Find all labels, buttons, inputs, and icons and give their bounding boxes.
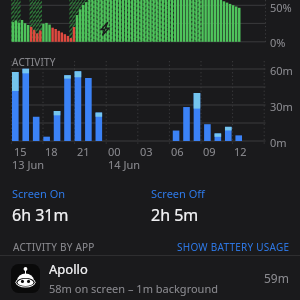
staticText: 06	[171, 144, 184, 159]
staticText: 59m	[264, 270, 289, 286]
staticText: 14 Jun	[108, 157, 141, 172]
staticText: 12	[234, 144, 247, 159]
staticText: 09	[203, 144, 216, 159]
staticText: 18	[45, 144, 58, 159]
button[interactable]: Apollo	[0, 256, 300, 300]
staticText: 0%	[270, 35, 286, 50]
staticText: 13 Jun	[12, 157, 45, 172]
staticText: Screen Off	[151, 186, 205, 201]
staticText: 2h 5m	[151, 204, 199, 226]
staticText: 03	[140, 144, 153, 159]
button[interactable]: SHOW BATTERY USAGE	[177, 240, 290, 254]
staticText: 60m	[270, 63, 293, 78]
staticText: 0m	[270, 135, 287, 150]
staticText: SHOW BATTERY USAGE	[177, 240, 290, 254]
staticText: 50%	[270, 0, 292, 15]
staticText: ACTIVITY BY APP	[13, 240, 95, 254]
staticText: 15	[14, 144, 27, 159]
staticText: 30m	[270, 99, 293, 114]
staticText: Apollo	[49, 260, 88, 278]
staticText: Screen On	[12, 186, 66, 201]
staticText: ACTIVITY	[12, 55, 56, 69]
staticText: 58m on screen – 1m background	[49, 281, 218, 296]
staticText: 6h 31m	[12, 204, 69, 226]
staticText: 00	[108, 144, 121, 159]
staticText: 21	[77, 144, 90, 159]
button[interactable]: Screen Off	[151, 186, 205, 226]
button[interactable]: Screen On	[12, 186, 69, 226]
